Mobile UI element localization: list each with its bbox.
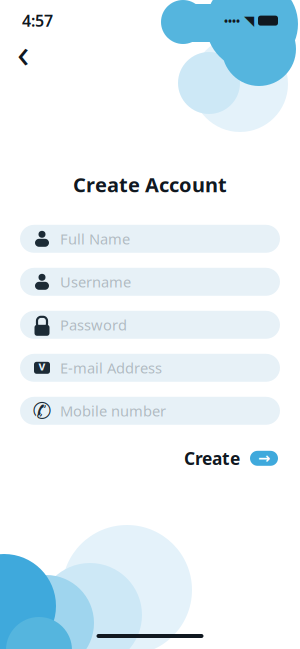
- staticText: Create Account: [73, 171, 227, 198]
- staticText: Password: [60, 315, 127, 335]
- staticText: Full Name: [60, 229, 130, 249]
- staticText: ‹: [17, 26, 29, 79]
- button[interactable]: v: [20, 354, 280, 382]
- staticText: v: [38, 358, 45, 374]
- button[interactable]: ✆: [20, 397, 280, 425]
- staticText: ◥: [244, 13, 254, 28]
- staticText: ✆: [32, 398, 51, 424]
- staticText: ••••: [224, 13, 240, 28]
- staticText: 4:57: [22, 10, 53, 31]
- button[interactable]: Username: [20, 268, 280, 296]
- staticText: Username: [60, 272, 131, 292]
- staticText: Create: [184, 447, 240, 470]
- button[interactable]: Full Name: [20, 225, 280, 253]
- button[interactable]: Password: [20, 311, 280, 339]
- staticText: Mobile number: [60, 401, 166, 421]
- staticText: →: [258, 450, 270, 467]
- button[interactable]: Back: [6, 35, 40, 69]
- staticText: E-mail Address: [60, 358, 162, 378]
- button[interactable]: Create: [184, 447, 278, 470]
